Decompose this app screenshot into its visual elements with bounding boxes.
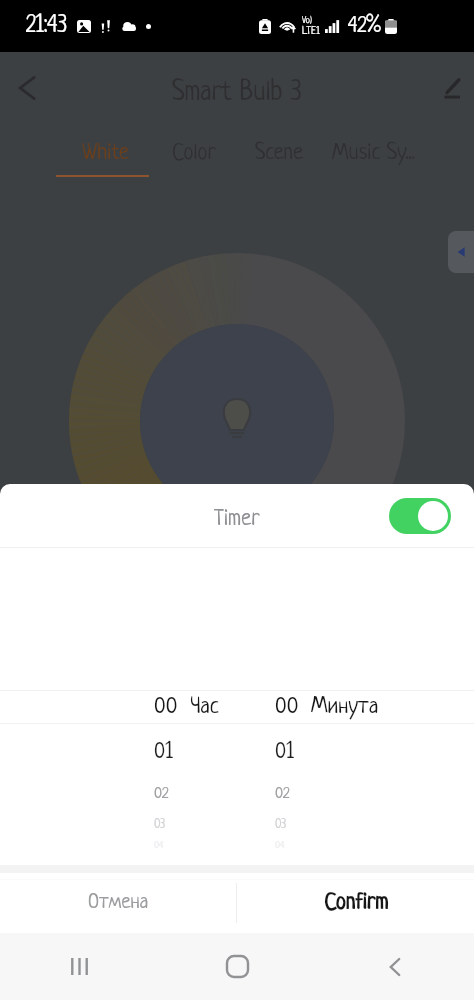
staticText: Music Sy... [332, 141, 415, 165]
button[interactable]: Confirm [237, 873, 474, 933]
staticText: Color [172, 141, 216, 165]
button[interactable]: Edit [427, 66, 467, 106]
staticText: Smart Bulb 3 [172, 78, 302, 108]
staticText: Confirm [324, 891, 388, 915]
button[interactable]: Color [154, 131, 234, 175]
staticText: 04 [154, 840, 164, 851]
button[interactable]: Timer [0, 484, 474, 547]
staticText: White [82, 141, 129, 165]
staticText: 02 [154, 786, 169, 803]
staticText: 03 [154, 818, 166, 832]
staticText: Час [190, 695, 219, 719]
button[interactable]: White [57, 131, 154, 175]
staticText: 01 [154, 741, 173, 764]
button[interactable]: Music Sy... [324, 131, 422, 175]
staticText: 01 [275, 741, 294, 764]
staticText: 04 [275, 840, 285, 851]
staticText: Scene [255, 141, 304, 165]
staticText: 21:43 [26, 14, 68, 39]
button[interactable]: Отмена [0, 873, 236, 933]
button[interactable]: Back [7, 68, 47, 108]
staticText: Отмена [88, 892, 149, 914]
button[interactable]: Home [158, 933, 316, 1000]
button[interactable]: Scene [234, 131, 324, 175]
staticText: Минута [311, 695, 379, 719]
staticText: 00 [154, 695, 178, 719]
button[interactable]: Open panel [448, 231, 474, 273]
staticText: 00 [275, 695, 299, 719]
button[interactable]: Recent apps [0, 933, 158, 1000]
staticText: 42% [348, 15, 381, 38]
staticText: Vo) [302, 15, 312, 26]
staticText: Timer [214, 507, 260, 531]
staticText: 03 [275, 818, 287, 832]
button[interactable]: Back [316, 933, 474, 1000]
staticText: 02 [275, 786, 290, 803]
staticText: LTE1 [302, 26, 320, 38]
button[interactable]: Timer on [389, 498, 451, 534]
